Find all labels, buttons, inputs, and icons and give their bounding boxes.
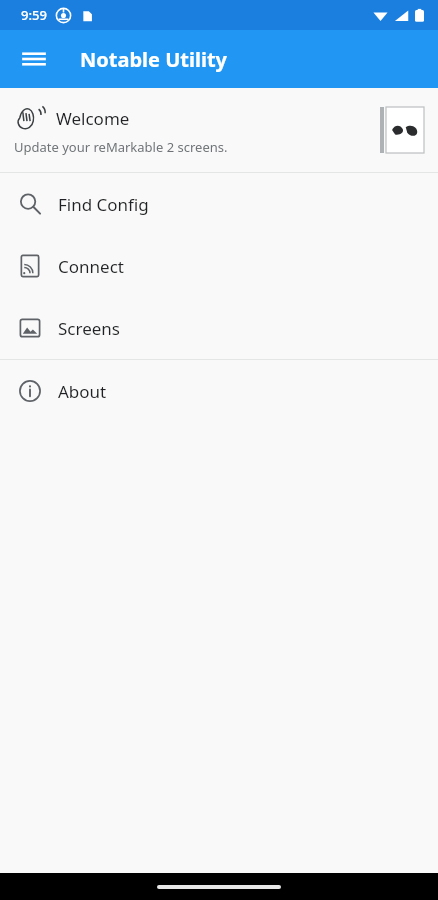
button[interactable]: About — [0, 360, 438, 422]
staticText: Welcome — [56, 107, 130, 130]
button[interactable]: Preview — [380, 106, 424, 154]
button[interactable]: Open navigation menu — [10, 35, 58, 83]
button[interactable]: Welcome — [0, 88, 438, 172]
staticText: Notable Utility — [80, 46, 227, 73]
staticText: 9:59 — [21, 6, 47, 24]
staticText: Connect — [58, 255, 124, 278]
button[interactable]: Connect — [0, 235, 438, 297]
staticText: Update your reMarkable 2 screens. — [14, 138, 228, 156]
button[interactable]: Screens — [0, 297, 438, 359]
staticText: About — [58, 380, 107, 403]
staticText: Screens — [58, 317, 120, 340]
button[interactable]: Find Config — [0, 173, 438, 235]
staticText: Find Config — [58, 193, 149, 216]
